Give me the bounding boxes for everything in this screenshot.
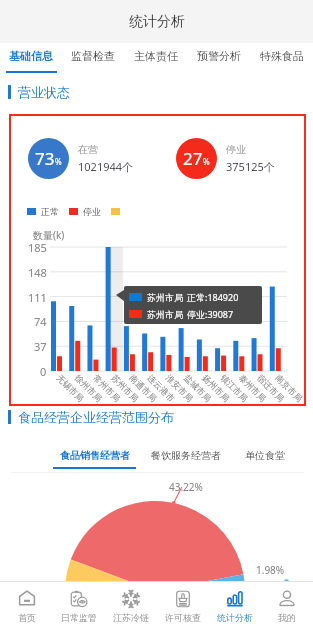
staticText: 74 bbox=[34, 314, 47, 329]
staticText: 特殊食品 bbox=[260, 49, 304, 63]
staticText: 停业 bbox=[226, 143, 246, 156]
staticText: 监督检查 bbox=[71, 49, 115, 63]
staticText: 185 bbox=[28, 240, 47, 255]
staticText: 统计分析 bbox=[217, 612, 253, 623]
staticText: 0 bbox=[40, 364, 47, 379]
staticText: % bbox=[55, 156, 62, 167]
staticText: 餐饮服务经营者 bbox=[151, 449, 221, 462]
staticText: 首页 bbox=[18, 612, 36, 623]
staticText: 苏州市局 bbox=[147, 309, 183, 320]
staticText: 27 bbox=[183, 147, 203, 170]
staticText: 正常:184920 bbox=[187, 291, 239, 303]
button[interactable]: 餐饮服务经营者 bbox=[145, 440, 226, 469]
staticText: 苏州市局 bbox=[147, 292, 183, 303]
staticText: 食品经营企业经营范围分布 bbox=[18, 409, 174, 425]
staticText: 37 bbox=[34, 339, 47, 354]
button[interactable]: 许可核查 bbox=[157, 582, 209, 623]
staticText: 我的 bbox=[278, 612, 296, 623]
button[interactable]: 主体责任 bbox=[124, 43, 187, 73]
staticText: 停业 bbox=[83, 206, 101, 216]
staticText: 单位食堂 bbox=[245, 449, 285, 462]
staticText: 预警分析 bbox=[197, 49, 241, 63]
button[interactable]: 日常监管 bbox=[53, 582, 105, 623]
staticText: 营业状态 bbox=[18, 84, 70, 100]
button[interactable]: 食品销售经营者 bbox=[53, 440, 136, 469]
button[interactable]: 首页 bbox=[0, 582, 53, 623]
staticText: 数量(k) bbox=[33, 228, 65, 242]
staticText: 主体责任 bbox=[134, 49, 178, 63]
staticText: 正常 bbox=[41, 206, 59, 216]
staticText: 在营 bbox=[78, 143, 98, 156]
button[interactable]: 我的 bbox=[261, 582, 313, 623]
staticText: 1.98% bbox=[256, 563, 285, 577]
button[interactable]: 基础信息 bbox=[0, 43, 62, 73]
button[interactable]: 单位食堂 bbox=[240, 440, 290, 469]
staticText: 1021944个 bbox=[78, 159, 134, 174]
button[interactable]: 特殊食品 bbox=[250, 43, 313, 73]
staticText: 停业:39087 bbox=[187, 308, 234, 320]
staticText: 基础信息 bbox=[9, 49, 53, 63]
staticText: 统计分析 bbox=[129, 13, 185, 31]
staticText: 日常监管 bbox=[61, 612, 97, 623]
staticText: 43.22% bbox=[169, 480, 203, 494]
button[interactable]: 统计分析 bbox=[209, 582, 261, 623]
button[interactable]: 江苏冷链 bbox=[105, 582, 157, 623]
staticText: 食品销售经营者 bbox=[60, 449, 130, 462]
staticText: 江苏冷链 bbox=[113, 612, 149, 623]
staticText: 111 bbox=[28, 290, 47, 305]
button[interactable]: 监督检查 bbox=[62, 43, 124, 73]
staticText: % bbox=[203, 156, 210, 167]
staticText: 148 bbox=[28, 265, 47, 280]
staticText: 许可核查 bbox=[165, 612, 201, 623]
staticText: 73 bbox=[35, 147, 55, 170]
staticText: 375125个 bbox=[226, 159, 275, 174]
button[interactable]: 预警分析 bbox=[187, 43, 250, 73]
